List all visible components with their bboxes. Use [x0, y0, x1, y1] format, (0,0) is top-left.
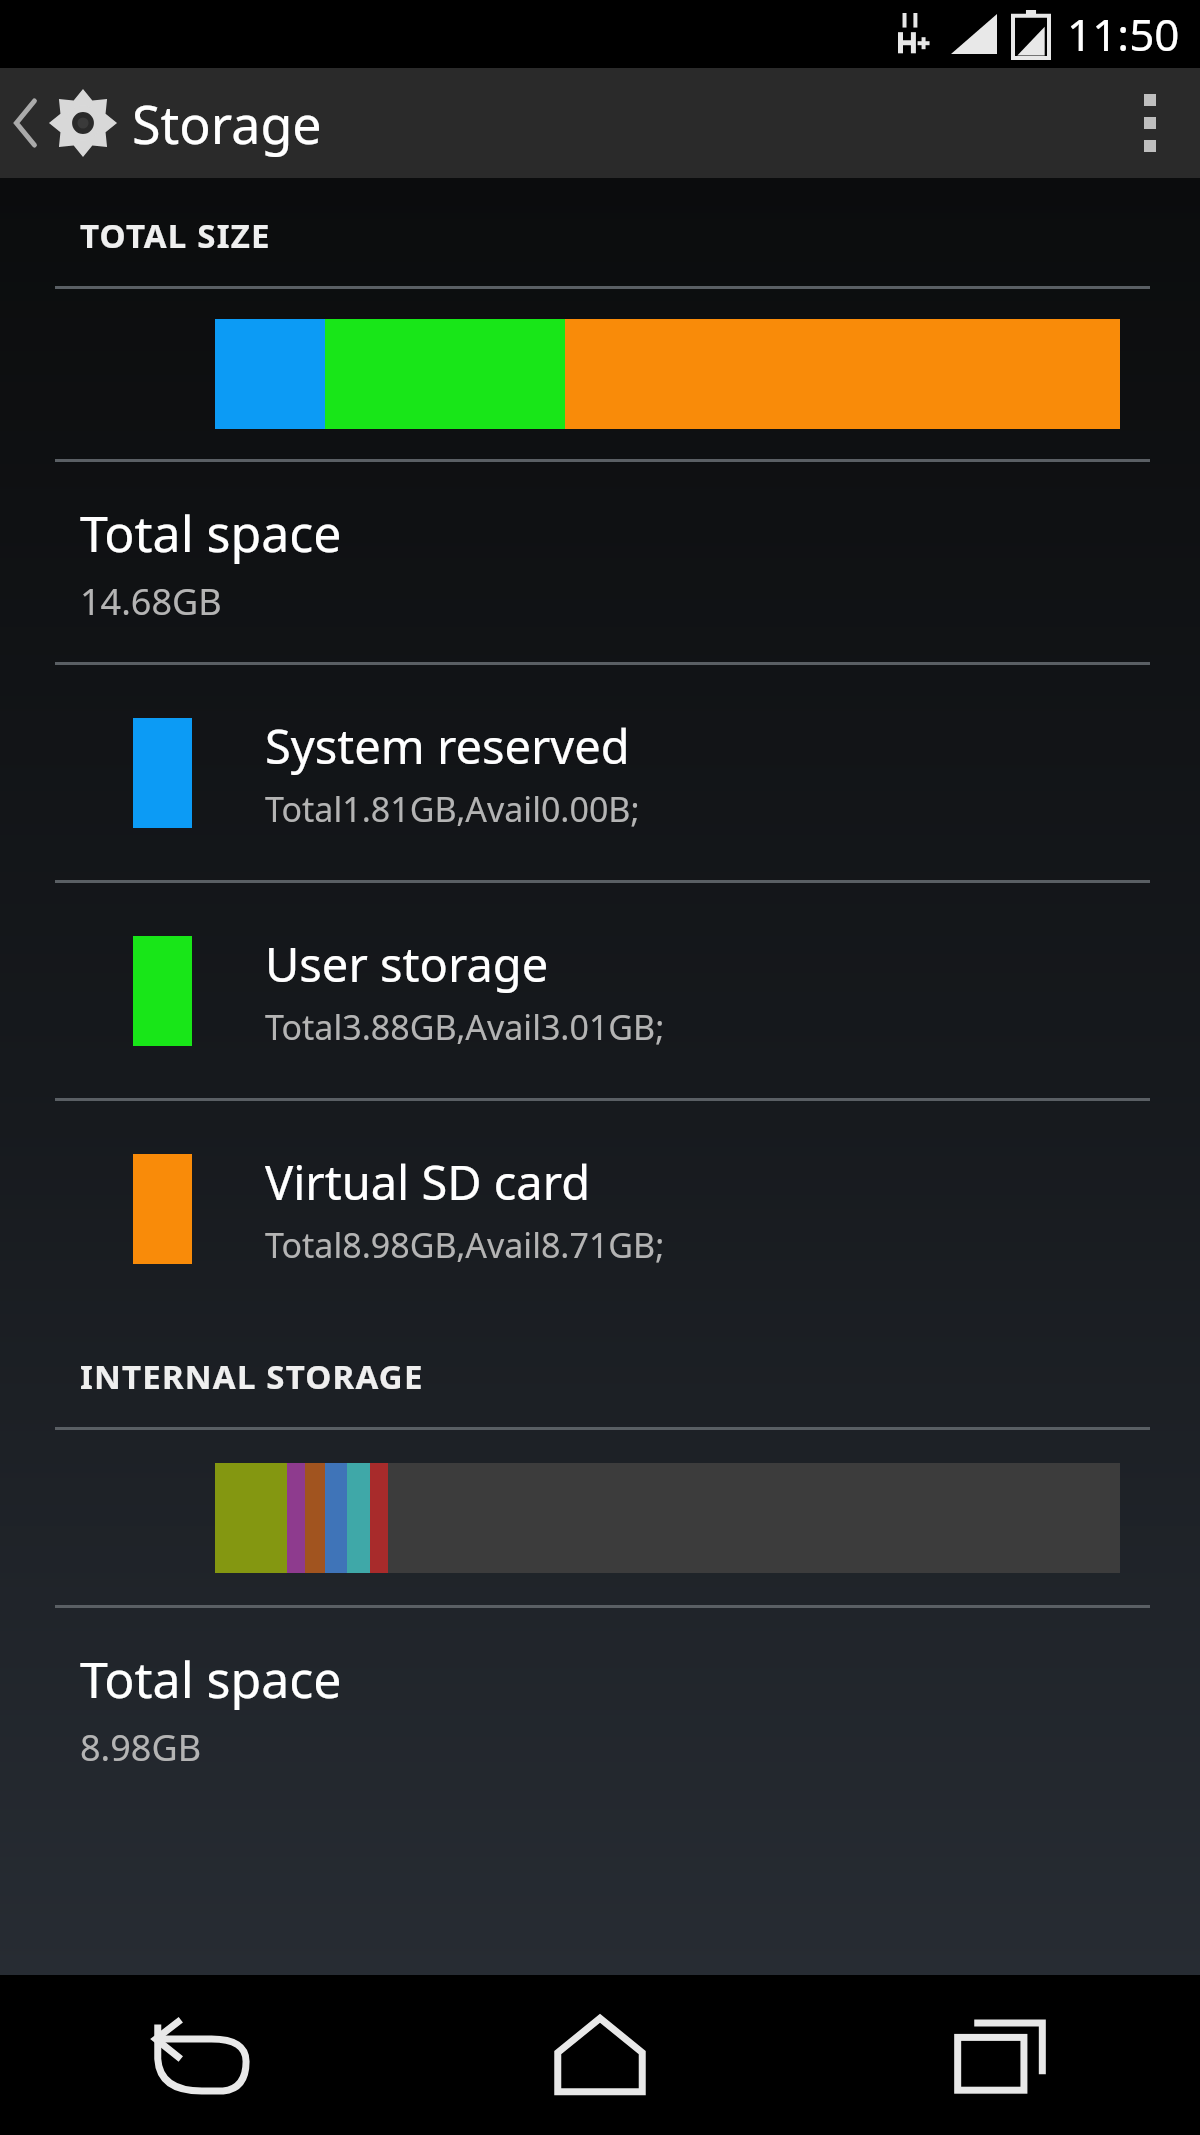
staticText: User storage	[265, 932, 549, 996]
staticText: Storage	[132, 88, 322, 159]
button[interactable]: Recent apps	[800, 1975, 1200, 2135]
button[interactable]: Total space	[0, 1608, 1200, 1808]
staticText: INTERNAL STORAGE	[80, 1354, 424, 1399]
staticText: 11:50	[1067, 4, 1180, 64]
button[interactable]: Total space	[0, 462, 1200, 662]
staticText: Virtual SD card	[265, 1150, 591, 1214]
button[interactable]: System reserved	[0, 665, 1200, 880]
staticText: System reserved	[265, 714, 630, 778]
staticText: Total space	[80, 1645, 342, 1713]
staticText: Total8.98GB,Avail8.71GB;	[265, 1222, 665, 1268]
staticText: 14.68GB	[80, 577, 222, 626]
staticText: TOTAL SIZE	[80, 213, 271, 258]
staticText: Total3.88GB,Avail3.01GB;	[265, 1004, 665, 1050]
button[interactable]: Navigate up, Storage	[0, 68, 322, 178]
button[interactable]: Home	[400, 1975, 800, 2135]
button[interactable]: User storage	[0, 883, 1200, 1098]
button[interactable]: Virtual SD card	[0, 1101, 1200, 1316]
button[interactable]: Back	[0, 1975, 400, 2135]
staticText: Total1.81GB,Avail0.00B;	[265, 786, 640, 832]
button[interactable]: More options	[1100, 68, 1200, 178]
staticText: Total space	[80, 499, 342, 567]
staticText: 8.98GB	[80, 1723, 202, 1772]
